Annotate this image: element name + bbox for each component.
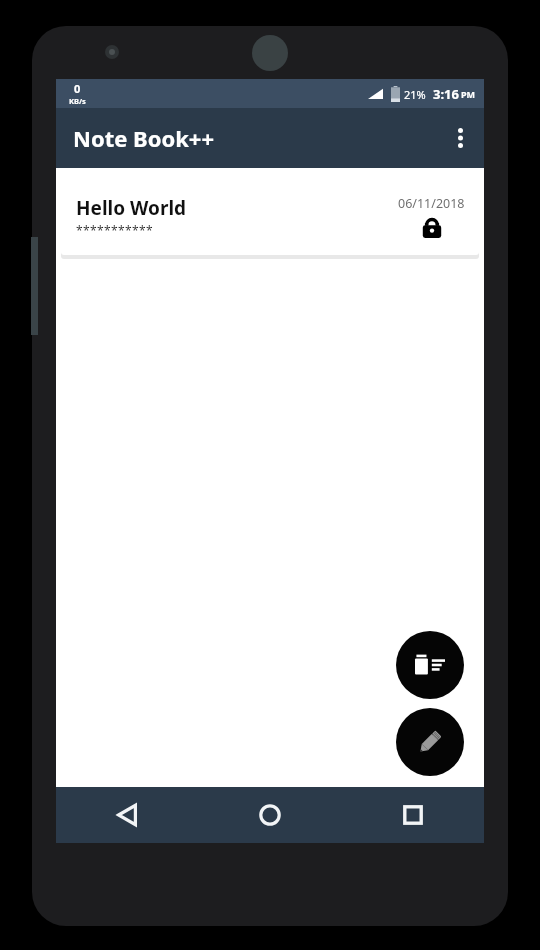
button[interactable]: Back xyxy=(56,787,198,843)
staticText: Hello World xyxy=(76,195,187,221)
staticText: PM xyxy=(461,88,476,100)
staticText: 3:16 xyxy=(433,85,459,103)
staticText: 21% xyxy=(404,87,426,102)
staticText: Note Book++ xyxy=(73,123,214,153)
button[interactable]: Delete notes xyxy=(396,631,464,699)
staticText: 06/11/2018 xyxy=(398,195,465,212)
staticText: KB/s xyxy=(69,96,86,106)
button[interactable]: Recent apps xyxy=(341,787,484,843)
button[interactable]: New note xyxy=(396,708,464,776)
button[interactable]: Hello World xyxy=(61,177,479,255)
staticText: *********** xyxy=(76,222,154,238)
staticText: 0 xyxy=(74,81,81,96)
button[interactable]: Home xyxy=(198,787,341,843)
button[interactable]: More options xyxy=(436,114,484,162)
